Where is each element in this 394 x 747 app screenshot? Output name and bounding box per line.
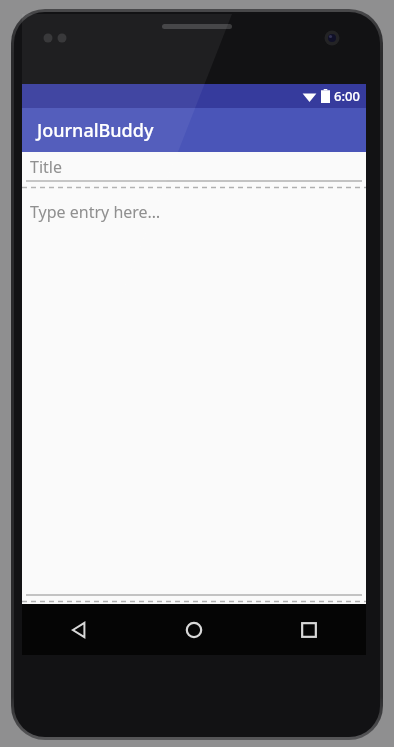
button[interactable]: Title: [22, 152, 366, 182]
staticText: JournalBuddy: [37, 118, 154, 143]
staticText: Title: [30, 156, 62, 178]
button[interactable]: Type entry here…: [22, 188, 366, 596]
staticText: Type entry here…: [30, 201, 161, 223]
button[interactable]: Home: [136, 604, 251, 655]
button[interactable]: Back: [22, 604, 136, 655]
button[interactable]: Recent apps: [251, 604, 366, 655]
staticText: 6:00: [334, 87, 360, 105]
